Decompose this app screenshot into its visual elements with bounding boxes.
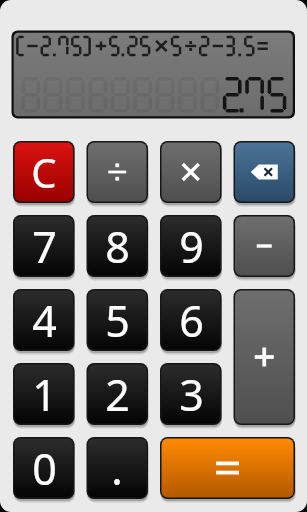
button[interactable]: 4 xyxy=(13,289,75,351)
button[interactable]: 2 xyxy=(87,363,149,425)
button[interactable]: 6 xyxy=(160,289,222,351)
button[interactable]: Divide xyxy=(87,141,149,203)
button[interactable]: 1 xyxy=(13,363,75,425)
button[interactable]: Minus xyxy=(234,215,296,277)
button[interactable]: Equals xyxy=(160,437,295,499)
button[interactable]: 0 xyxy=(13,437,75,499)
staticText: 0 xyxy=(32,439,57,498)
button[interactable]: Plus xyxy=(234,289,296,425)
staticText: 6 xyxy=(179,291,204,350)
button[interactable]: 9 xyxy=(160,215,222,277)
staticText: 3 xyxy=(179,365,204,424)
staticText: 9 xyxy=(179,217,204,276)
staticText: 8 xyxy=(105,217,130,276)
staticText: 1 xyxy=(32,365,57,424)
button[interactable]: 5 xyxy=(87,289,149,351)
button[interactable]: Multiply xyxy=(160,141,222,203)
staticText: 5 xyxy=(105,291,130,350)
staticText: 7 xyxy=(32,217,57,276)
button[interactable]: Backspace xyxy=(234,141,296,203)
staticText: 4 xyxy=(32,291,57,350)
button[interactable]: Clear xyxy=(13,141,75,203)
button[interactable]: 8 xyxy=(87,215,149,277)
button[interactable]: 3 xyxy=(160,363,222,425)
button[interactable]: 7 xyxy=(13,215,75,277)
staticText: C xyxy=(31,145,57,199)
staticText: 2 xyxy=(105,365,130,424)
button[interactable]: . xyxy=(87,437,149,499)
staticText: . xyxy=(111,439,123,498)
